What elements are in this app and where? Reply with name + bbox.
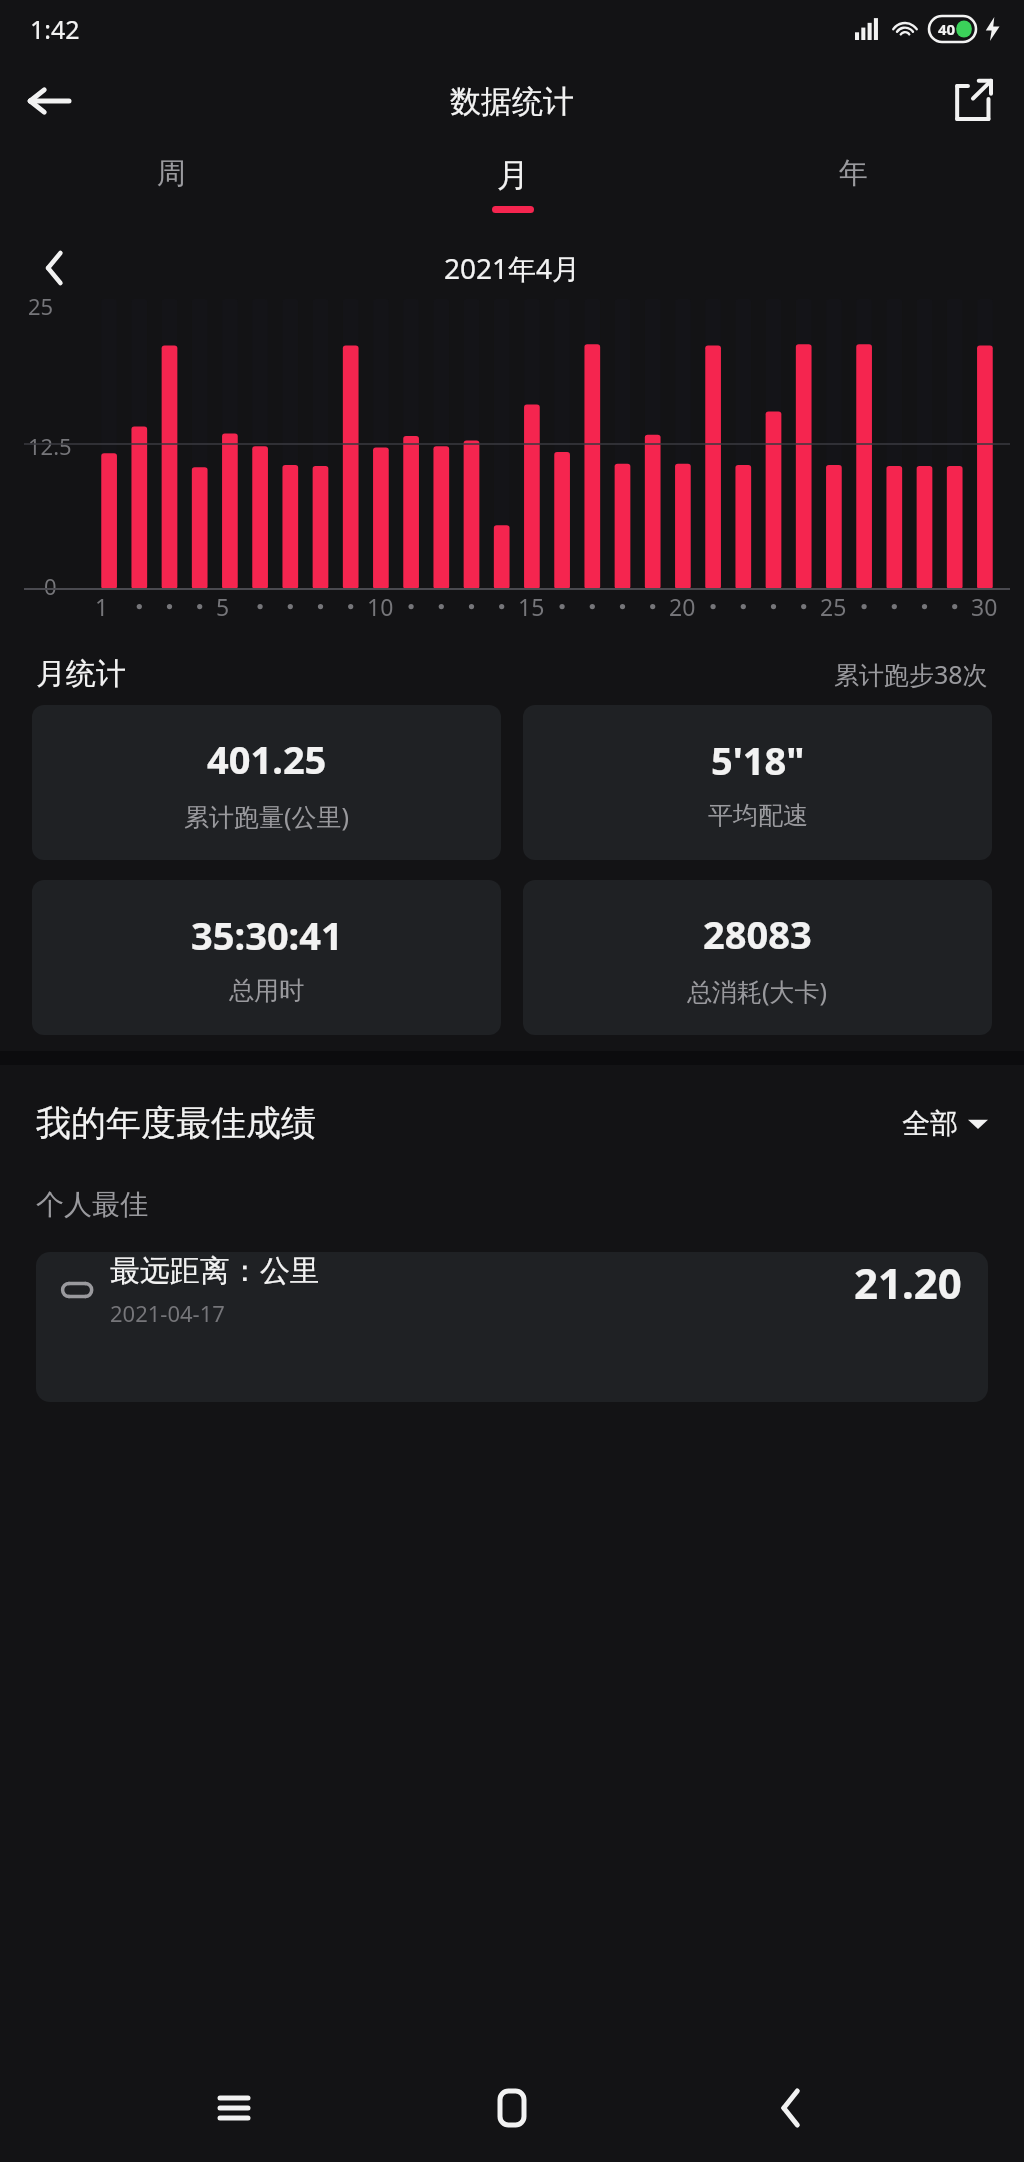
button[interactable]: 401.25 [32,705,501,860]
staticText: 总用时 [229,975,304,1006]
button[interactable]: Previous month [26,240,82,296]
staticText: 401.25 [207,733,327,785]
staticText: 全部 [902,1106,958,1141]
staticText: 2021年4月 [444,249,581,287]
staticText: 2021-04-17 [110,1298,225,1328]
staticText: 12.5 [28,431,72,461]
staticText: 5'18" [711,734,805,786]
staticText: 年 [839,155,868,192]
button[interactable]: 年 [683,145,1024,237]
staticText: 25 [28,291,54,321]
button[interactable]: 28083 [523,880,992,1035]
button[interactable]: Share [940,68,1006,134]
staticText: 15 [518,591,545,622]
staticText: 月统计 [36,655,126,693]
button[interactable]: 周 [0,145,342,237]
staticText: 月 [497,155,529,195]
staticText: 我的年度最佳成绩 [36,1101,316,1145]
staticText: 累计跑步38次 [834,657,988,691]
staticText: 30 [971,591,998,622]
button[interactable]: 5'18" [523,705,992,860]
button[interactable]: Back [16,68,82,134]
staticText: 总消耗(大卡) [687,974,828,1008]
staticText: 周 [157,155,186,192]
button[interactable]: Back [746,2063,836,2153]
staticText: 20 [669,591,696,622]
staticText: 最远距离：公里 [110,1252,320,1290]
button[interactable]: 最远距离：公里 [36,1252,988,1402]
staticText: 5 [216,591,230,622]
staticText: 40 [938,19,956,39]
button[interactable]: 月 [342,145,683,237]
button[interactable]: 35:30:41 [32,880,501,1035]
staticText: 1 [95,591,109,622]
button[interactable]: 全部 [902,1106,988,1141]
button[interactable]: Recents [189,2063,279,2153]
staticText: 累计跑量(公里) [184,799,350,833]
staticText: 平均配速 [708,800,808,831]
staticText: 1:42 [30,12,80,46]
button[interactable]: Home [467,2063,557,2153]
staticText: 个人最佳 [36,1187,148,1222]
staticText: 0 [44,571,57,601]
staticText: 25 [820,591,847,622]
staticText: 数据统计 [450,82,574,121]
staticText: 28083 [703,908,812,960]
staticText: 21.20 [854,1254,962,1311]
staticText: 10 [367,591,394,622]
staticText: 35:30:41 [191,909,343,961]
